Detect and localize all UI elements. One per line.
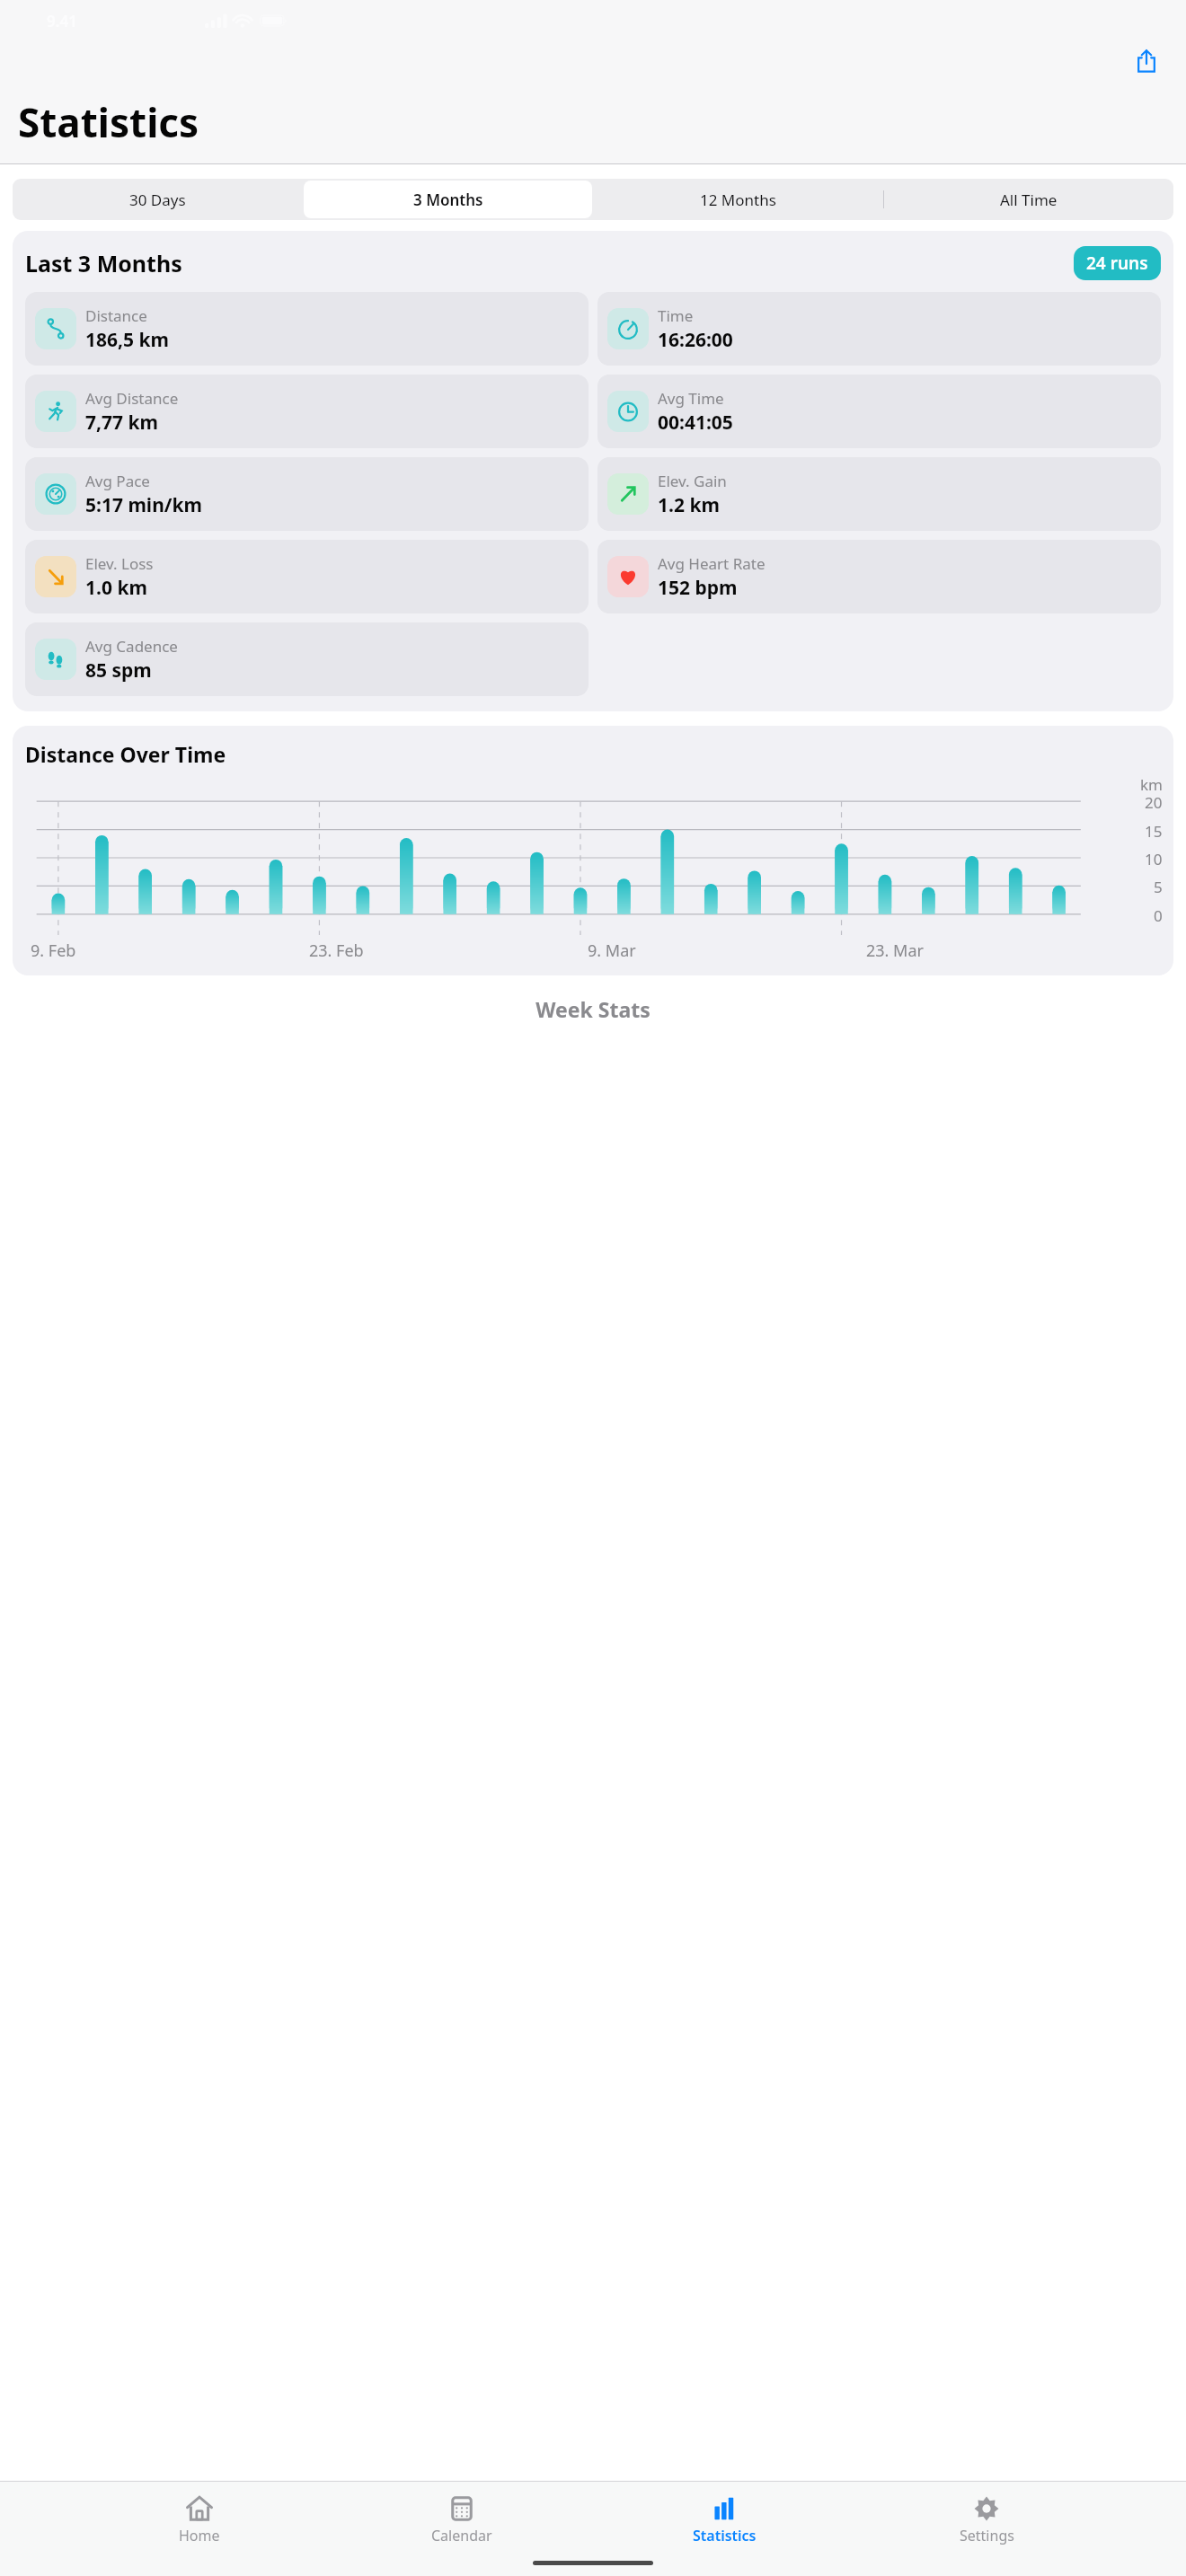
button[interactable]: Avg Cadence <box>25 622 589 696</box>
staticText: Week Stats <box>0 995 1186 1023</box>
button[interactable]: Share <box>1127 41 1166 81</box>
staticText: 16:26:00 <box>658 327 733 353</box>
staticText: 12 Months <box>700 190 776 210</box>
button[interactable]: Avg Heart Rate <box>597 540 1161 613</box>
staticText: 20 <box>1145 792 1163 813</box>
button[interactable]: Avg Time <box>597 375 1161 448</box>
staticText: Calendar <box>431 2526 492 2545</box>
button[interactable]: Settings <box>924 2491 1049 2549</box>
staticText: 1.0 km <box>85 575 147 601</box>
staticText: Statistics <box>18 95 199 149</box>
staticText: km <box>1140 774 1163 795</box>
staticText: 00:41:05 <box>658 410 733 436</box>
staticText: 30 Days <box>129 190 186 210</box>
staticText: Distance Over Time <box>25 740 226 768</box>
button[interactable]: Home <box>137 2491 262 2549</box>
staticText: 24 runs <box>1086 251 1148 275</box>
button[interactable]: 24 runs <box>1074 246 1161 280</box>
staticText: 23. Mar <box>866 940 924 962</box>
staticText: Elev. Gain <box>658 471 727 491</box>
staticText: Distance <box>85 305 147 326</box>
button[interactable]: 12 Months <box>593 179 883 220</box>
button[interactable]: Elev. Gain <box>597 457 1161 531</box>
button[interactable]: All Time <box>883 179 1173 220</box>
staticText: 3 Months <box>413 190 483 210</box>
staticText: Settings <box>960 2526 1014 2545</box>
button[interactable]: 30 Days <box>13 179 303 220</box>
button[interactable]: Avg Pace <box>25 457 589 531</box>
staticText: 7,77 km <box>85 410 158 436</box>
staticText: 0 <box>1154 905 1163 926</box>
staticText: 5:17 min/km <box>85 492 203 518</box>
staticText: Avg Time <box>658 388 724 409</box>
staticText: Home <box>179 2526 220 2545</box>
staticText: All Time <box>1000 190 1058 210</box>
button[interactable]: Distance <box>25 292 589 366</box>
staticText: Avg Pace <box>85 471 150 491</box>
button[interactable]: 3 Months <box>303 179 593 220</box>
staticText: 85 spm <box>85 657 152 684</box>
staticText: 9. Feb <box>31 940 76 962</box>
staticText: Avg Cadence <box>85 636 178 657</box>
staticText: 152 bpm <box>658 575 738 601</box>
button[interactable]: Avg Distance <box>25 375 589 448</box>
staticText: 10 <box>1145 849 1163 869</box>
staticText: 5 <box>1154 877 1163 897</box>
staticText: 9. Mar <box>588 940 636 962</box>
staticText: 23. Feb <box>309 940 364 962</box>
button[interactable]: Elev. Loss <box>25 540 589 613</box>
button[interactable]: Statistics <box>661 2491 787 2549</box>
button[interactable]: Time <box>597 292 1161 366</box>
staticText: 1.2 km <box>658 492 720 518</box>
staticText: Last 3 Months <box>25 248 182 278</box>
staticText: Statistics <box>693 2526 757 2545</box>
staticText: Avg Heart Rate <box>658 553 766 574</box>
staticText: 186,5 km <box>85 327 169 353</box>
staticText: Time <box>658 305 694 326</box>
staticText: Avg Distance <box>85 388 179 409</box>
button[interactable]: Calendar <box>399 2491 525 2549</box>
staticText: Elev. Loss <box>85 553 154 574</box>
staticText: 15 <box>1145 821 1163 842</box>
